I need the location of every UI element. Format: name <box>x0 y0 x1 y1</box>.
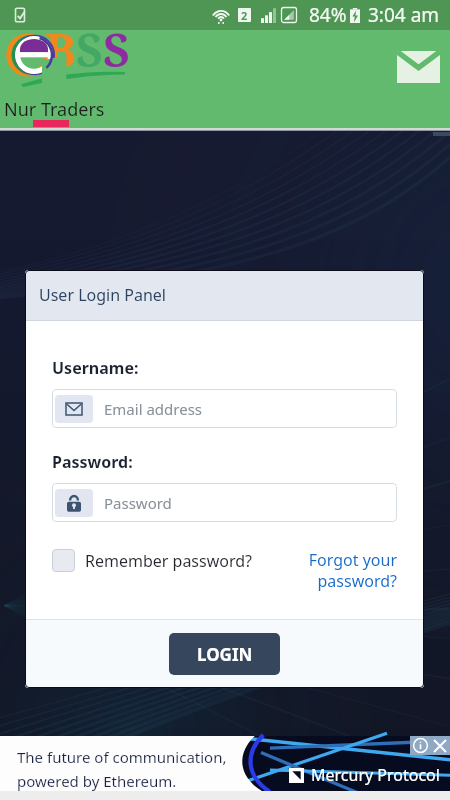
button[interactable]: Close ad <box>430 736 450 755</box>
staticText: Password <box>104 493 172 513</box>
button[interactable]: LOGIN <box>169 633 280 675</box>
button[interactable]: Password <box>52 483 397 522</box>
staticText: Nur Traders <box>4 97 105 122</box>
staticText: B <box>45 18 76 78</box>
staticText: The future of communication, <box>17 747 227 767</box>
staticText: Forgot your password? <box>297 549 397 592</box>
staticText: Email address <box>104 399 203 419</box>
staticText: Username: <box>52 357 139 379</box>
staticText: S <box>76 18 103 78</box>
staticText: User Login Panel <box>39 284 166 306</box>
staticText: LOGIN <box>197 643 253 666</box>
staticText: powered by Ethereum. <box>17 771 177 791</box>
staticText: Remember password? <box>85 550 253 572</box>
staticText: S <box>103 18 130 78</box>
button[interactable]: Email address <box>52 389 397 428</box>
button[interactable]: Messages <box>391 39 446 94</box>
staticText: 2 <box>241 8 248 22</box>
button[interactable]: Remember password? <box>52 549 253 572</box>
button[interactable]: Ad info <box>410 736 430 755</box>
staticText: Mercury Protocol <box>311 764 440 786</box>
button[interactable]: Forgot your password? <box>297 549 397 592</box>
staticText: 3:04 am <box>368 2 440 28</box>
staticText: 84% <box>309 2 347 28</box>
staticText: Password: <box>52 451 133 473</box>
